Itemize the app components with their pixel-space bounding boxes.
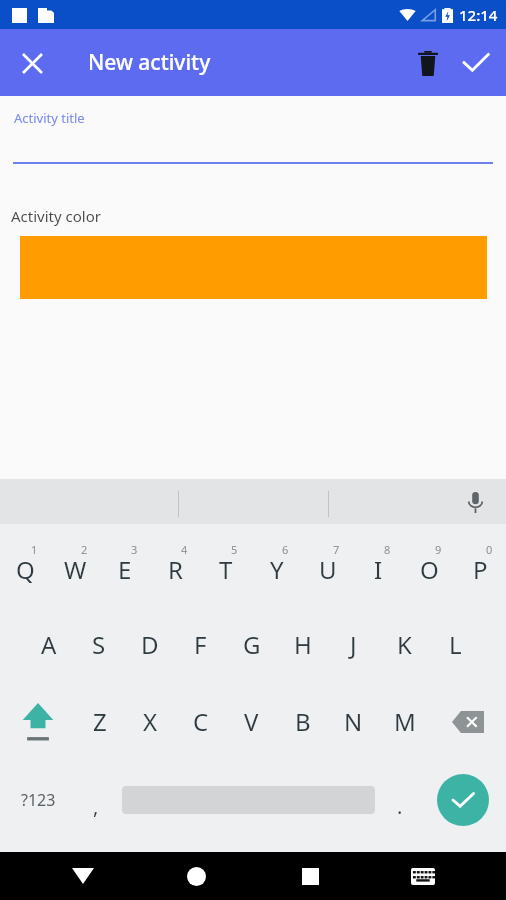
button[interactable]: 0 xyxy=(455,524,506,606)
button[interactable]: G xyxy=(226,606,277,683)
button[interactable]: Enter xyxy=(420,760,506,840)
staticText: H xyxy=(294,628,312,661)
staticText: Activity color xyxy=(11,206,101,226)
button[interactable]: Home xyxy=(166,852,226,900)
button[interactable]: 1 xyxy=(0,524,50,606)
button[interactable]: J xyxy=(328,606,379,683)
staticText: ?123 xyxy=(21,789,56,811)
button[interactable]: K xyxy=(379,606,430,683)
staticText: Q xyxy=(16,553,35,586)
button[interactable]: 4 xyxy=(150,524,200,606)
staticText: S xyxy=(92,628,106,661)
staticText: A xyxy=(41,628,57,661)
staticText: 6 xyxy=(282,542,289,557)
staticText: J xyxy=(350,628,357,661)
staticText: V xyxy=(244,705,259,738)
staticText: 1 xyxy=(31,542,38,557)
staticText: L xyxy=(449,628,462,661)
button[interactable]: , xyxy=(76,760,116,840)
button[interactable]: N xyxy=(328,683,379,760)
button[interactable]: V xyxy=(226,683,277,760)
button[interactable]: S xyxy=(74,606,124,683)
staticText: 4 xyxy=(181,542,188,557)
button[interactable]: 9 xyxy=(404,524,455,606)
button[interactable]: Hide keyboard xyxy=(53,852,113,900)
button[interactable]: Switch keyboard xyxy=(393,852,453,900)
button[interactable]: L xyxy=(430,606,481,683)
staticText: 9 xyxy=(435,542,442,557)
staticText: P xyxy=(473,553,488,586)
staticText: N xyxy=(344,705,363,738)
button[interactable]: 6 xyxy=(251,524,302,606)
staticText: 2 xyxy=(81,542,88,557)
button[interactable]: 7 xyxy=(302,524,353,606)
button[interactable]: 3 xyxy=(100,524,150,606)
staticText: E xyxy=(118,553,132,586)
button[interactable]: D xyxy=(124,606,175,683)
button[interactable]: B xyxy=(277,683,328,760)
staticText: C xyxy=(193,705,209,738)
staticText: 0 xyxy=(486,542,493,557)
staticText: R xyxy=(168,553,183,586)
button[interactable]: X xyxy=(125,683,175,760)
button[interactable]: Shift xyxy=(0,683,75,760)
staticText: , xyxy=(93,793,99,820)
button[interactable]: Save xyxy=(452,39,500,87)
button[interactable]: C xyxy=(175,683,226,760)
staticText: Z xyxy=(93,705,107,738)
button[interactable]: . xyxy=(380,760,420,840)
staticText: New activity xyxy=(88,48,211,77)
staticText: I xyxy=(374,553,383,586)
staticText: 12:14 xyxy=(459,5,498,25)
staticText: G xyxy=(243,628,261,661)
button[interactable]: ?123 xyxy=(0,760,76,840)
button[interactable]: Recent apps xyxy=(280,852,340,900)
button[interactable]: Close xyxy=(8,39,56,87)
button[interactable]: A xyxy=(24,606,74,683)
staticText: 7 xyxy=(333,542,340,557)
button[interactable]: M xyxy=(379,683,430,760)
staticText: B xyxy=(295,705,311,738)
button[interactable]: 2 xyxy=(50,524,100,606)
staticText: W xyxy=(64,553,87,586)
button[interactable]: Z xyxy=(75,683,125,760)
staticText: . xyxy=(397,793,403,820)
button[interactable]: 8 xyxy=(353,524,404,606)
staticText: 8 xyxy=(384,542,391,557)
staticText: D xyxy=(141,628,159,661)
staticText: T xyxy=(219,553,233,586)
button[interactable]: Backspace xyxy=(430,683,506,760)
button[interactable]: H xyxy=(277,606,328,683)
button[interactable]: Space xyxy=(116,760,380,840)
button[interactable]: 5 xyxy=(200,524,251,606)
staticText: U xyxy=(319,553,337,586)
staticText: Activity title xyxy=(14,109,85,127)
staticText: Y xyxy=(270,553,284,586)
staticText: 3 xyxy=(131,542,138,557)
staticText: O xyxy=(420,553,439,586)
staticText: M xyxy=(394,705,416,738)
staticText: K xyxy=(397,628,412,661)
button[interactable]: Voice input xyxy=(456,483,494,521)
button[interactable]: F xyxy=(175,606,226,683)
staticText: X xyxy=(143,705,158,738)
staticText: 5 xyxy=(231,542,238,557)
button[interactable]: Delete xyxy=(404,39,452,87)
staticText: F xyxy=(194,628,207,661)
